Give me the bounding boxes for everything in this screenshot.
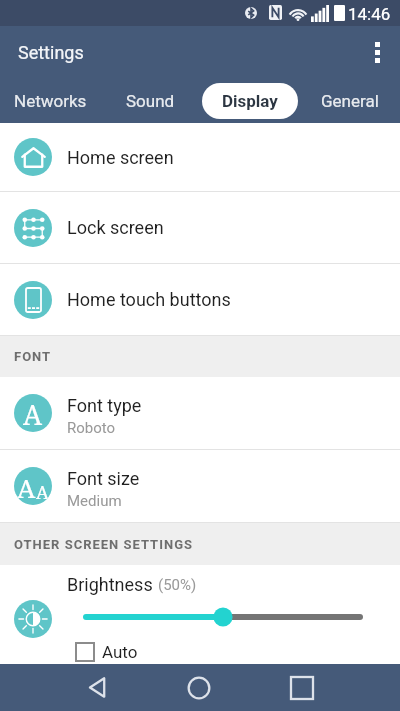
staticText: A: [17, 470, 36, 505]
button[interactable]: Home screen: [0, 123, 400, 192]
button[interactable]: A: [0, 450, 400, 523]
staticText: Auto: [102, 642, 138, 662]
button[interactable]: Home touch buttons: [0, 264, 400, 336]
staticText: Sound: [126, 91, 175, 111]
staticText: Networks: [14, 91, 87, 111]
button[interactable]: Auto: [76, 641, 138, 663]
button[interactable]: Back: [52, 664, 142, 711]
staticText: General: [321, 91, 379, 111]
staticText: A: [23, 396, 43, 432]
staticText: Display: [222, 91, 278, 111]
staticText: Medium: [67, 492, 122, 510]
staticText: Font size: [67, 468, 140, 489]
staticText: Home screen: [67, 147, 174, 168]
staticText: Font type: [67, 395, 142, 416]
staticText: Roboto: [67, 419, 116, 437]
staticText: Home touch buttons: [67, 289, 231, 310]
button[interactable]: Lock screen: [0, 192, 400, 264]
button[interactable]: Networks: [0, 79, 100, 123]
staticText: Lock screen: [67, 217, 164, 238]
button[interactable]: General: [300, 79, 400, 123]
button[interactable]: Display: [200, 79, 300, 123]
staticText: (50%): [158, 576, 197, 594]
button[interactable]: Home: [154, 664, 244, 711]
staticText: 14:46: [348, 4, 391, 24]
button[interactable]: Recents: [257, 664, 347, 711]
staticText: Brightness: [67, 574, 153, 595]
button[interactable]: A: [0, 377, 400, 450]
staticText: A: [36, 480, 49, 505]
staticText: FONT: [14, 349, 52, 364]
button[interactable]: More options: [354, 26, 400, 79]
staticText: Settings: [18, 42, 84, 63]
staticText: OTHER SCREEN SETTINGS: [14, 537, 194, 552]
button[interactable]: Sound: [100, 79, 200, 123]
